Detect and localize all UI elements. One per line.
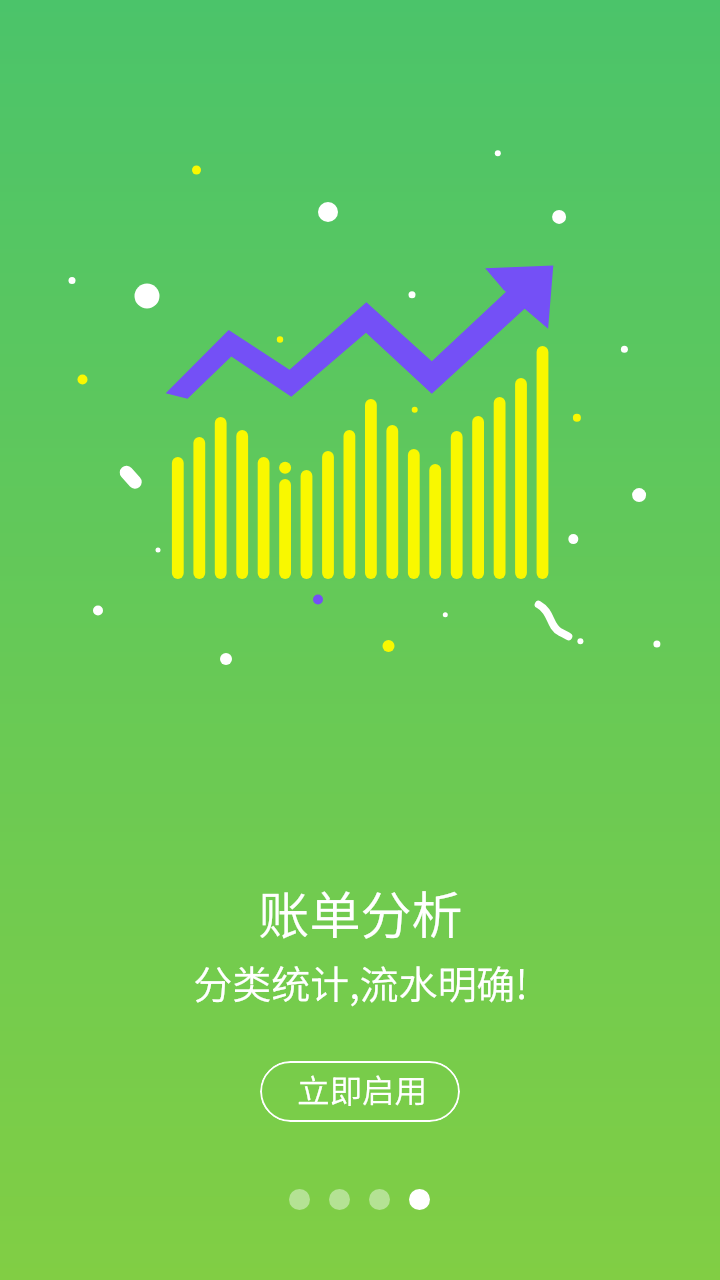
staticText: 账单分析 [258,875,463,949]
button[interactable]: 立即启用 [260,1061,460,1122]
button[interactable]: Page 2 [329,1189,350,1210]
button[interactable]: Page 3 [369,1189,390,1210]
staticText: 立即启用 [297,1065,428,1112]
button[interactable]: Page 4 [409,1189,430,1210]
staticText: 分类统计,流水明确! [193,954,528,1010]
button[interactable]: Page 1 [289,1189,310,1210]
